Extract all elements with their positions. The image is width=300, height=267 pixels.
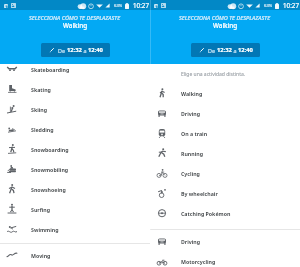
staticText: Cycling bbox=[181, 170, 200, 177]
staticText: De bbox=[208, 47, 217, 54]
button[interactable]: Snowboarding bbox=[0, 139, 150, 159]
staticText: Walking bbox=[181, 90, 203, 97]
staticText: Walking bbox=[63, 21, 88, 30]
staticText: Elige una actividad distinta. bbox=[181, 71, 246, 78]
button[interactable]: Motorcycling bbox=[150, 251, 300, 267]
button[interactable]: By wheelchair bbox=[150, 183, 300, 203]
staticText: Swimming bbox=[31, 226, 59, 233]
staticText: On a train bbox=[181, 130, 208, 137]
staticText: Running bbox=[181, 150, 203, 157]
staticText: Motorcycling bbox=[181, 258, 216, 265]
staticText: SELECCIONA CÓMO TE DESPLAZASTE bbox=[179, 14, 271, 22]
staticText: a bbox=[232, 47, 238, 54]
staticText: Driving bbox=[181, 110, 201, 117]
staticText: SELECCIONA CÓMO TE DESPLAZASTE bbox=[29, 14, 121, 22]
staticText: Driving bbox=[181, 238, 201, 245]
button[interactable]: Skiing bbox=[0, 99, 150, 119]
button[interactable]: Skating bbox=[0, 79, 150, 99]
button[interactable]: De bbox=[41, 43, 110, 57]
button[interactable]: Sledding bbox=[0, 119, 150, 139]
staticText: 10:27 bbox=[283, 1, 299, 10]
staticText: Snowshoeing bbox=[31, 186, 66, 193]
staticText: 12:32 bbox=[217, 46, 232, 54]
staticText: Skating bbox=[31, 86, 51, 93]
staticText: Skateboarding bbox=[31, 66, 70, 73]
button[interactable]: Catching Pokémon bbox=[150, 203, 300, 223]
button[interactable]: Moving bbox=[0, 245, 150, 265]
staticText: Moving bbox=[31, 252, 51, 259]
staticText: Skiing bbox=[31, 106, 48, 113]
button[interactable]: Snowshoeing bbox=[0, 179, 150, 199]
staticText: 10:27 bbox=[133, 1, 149, 10]
staticText: Sledding bbox=[31, 126, 54, 133]
staticText: 12:32 bbox=[67, 46, 82, 54]
button[interactable]: Skateboarding bbox=[0, 59, 150, 79]
button[interactable]: Running bbox=[150, 143, 300, 163]
button[interactable]: Driving bbox=[150, 103, 300, 123]
staticText: Snowboarding bbox=[31, 146, 69, 153]
staticText: Snowmobiling bbox=[31, 166, 69, 173]
button[interactable]: Driving bbox=[150, 231, 300, 251]
staticText: 63% bbox=[264, 3, 273, 9]
button[interactable]: On a train bbox=[150, 123, 300, 143]
button[interactable]: Walking bbox=[150, 83, 300, 103]
staticText: 63% bbox=[114, 3, 123, 9]
staticText: Surfing bbox=[31, 206, 50, 213]
staticText: 12:40 bbox=[238, 46, 253, 54]
button[interactable]: De bbox=[191, 43, 260, 57]
button[interactable]: Snowmobiling bbox=[0, 159, 150, 179]
button[interactable]: Surfing bbox=[0, 199, 150, 219]
staticText: Catching Pokémon bbox=[181, 210, 231, 217]
staticText: By wheelchair bbox=[181, 190, 218, 197]
staticText: 12:40 bbox=[88, 46, 103, 54]
button[interactable]: Swimming bbox=[0, 219, 150, 239]
staticText: a bbox=[82, 47, 88, 54]
staticText: Walking bbox=[213, 21, 238, 30]
staticText: De bbox=[58, 47, 67, 54]
button[interactable]: Cycling bbox=[150, 163, 300, 183]
